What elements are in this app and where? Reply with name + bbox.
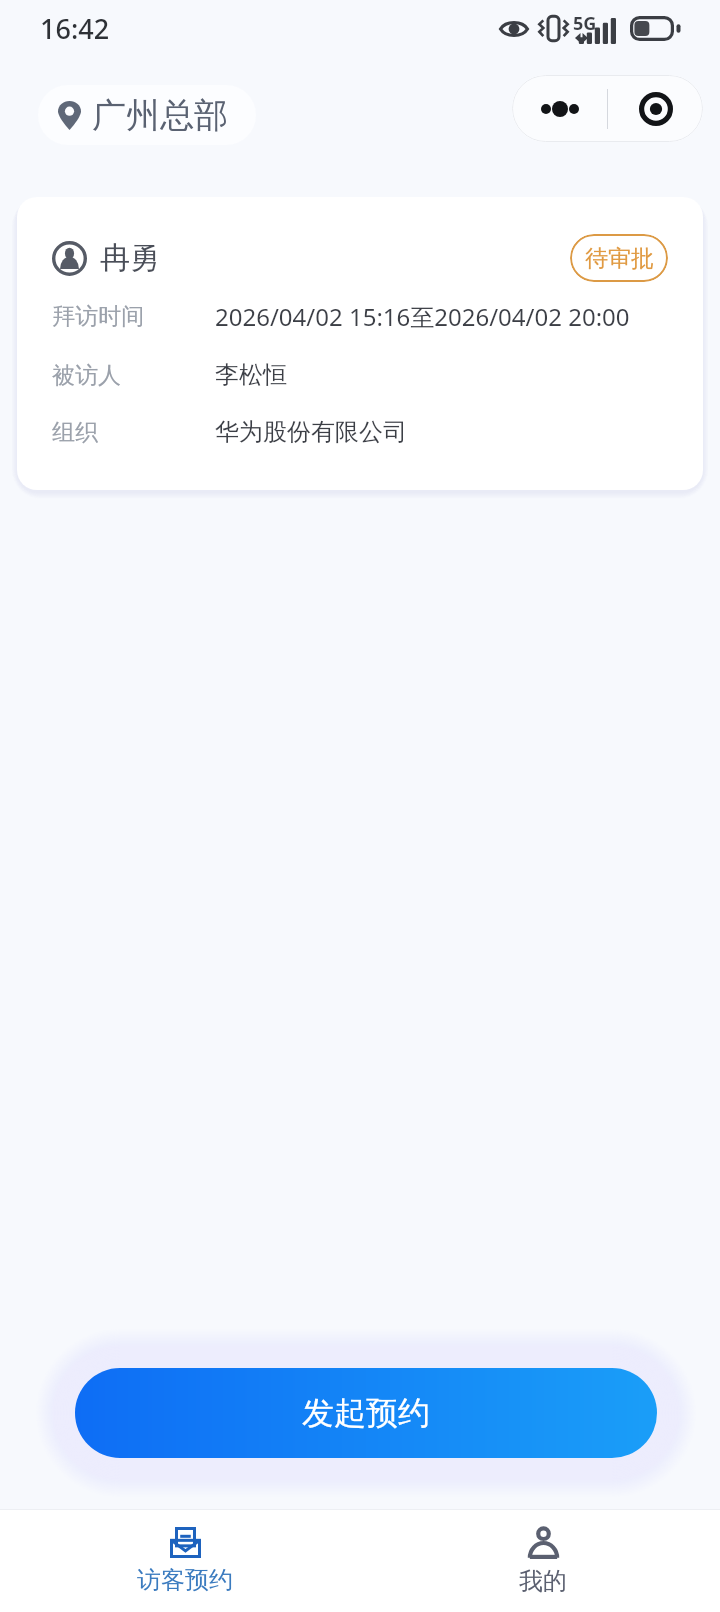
staticText: 5G <box>573 11 597 36</box>
button[interactable]: 我的 <box>483 1521 603 1602</box>
staticText: 拜访时间 <box>52 302 144 331</box>
button[interactable]: 访客预约 <box>101 1521 269 1601</box>
staticText: 被访人 <box>52 361 121 390</box>
staticText: 访客预约 <box>137 1565 233 1595</box>
staticText: 待审批 <box>585 244 654 273</box>
button[interactable]: 广州总部 <box>38 85 256 145</box>
staticText: 2026/04/02 15:16至2026/04/02 20:00 <box>215 300 630 333</box>
staticText: 组织 <box>52 418 98 447</box>
staticText: 华为股份有限公司 <box>215 417 407 447</box>
staticText: 我的 <box>519 1566 567 1596</box>
button[interactable]: 发起预约 <box>75 1368 657 1458</box>
staticText: 发起预约 <box>302 1393 430 1433</box>
button[interactable]: Close mini program <box>608 75 703 142</box>
staticText: 广州总部 <box>92 94 228 137</box>
button[interactable]: More options <box>512 75 607 142</box>
staticText: 冉勇 <box>100 239 160 277</box>
button[interactable]: 冉勇 <box>17 197 703 490</box>
staticText: 李松恒 <box>215 360 287 390</box>
button[interactable]: 待审批 <box>570 234 668 282</box>
staticText: 16:42 <box>40 10 110 47</box>
